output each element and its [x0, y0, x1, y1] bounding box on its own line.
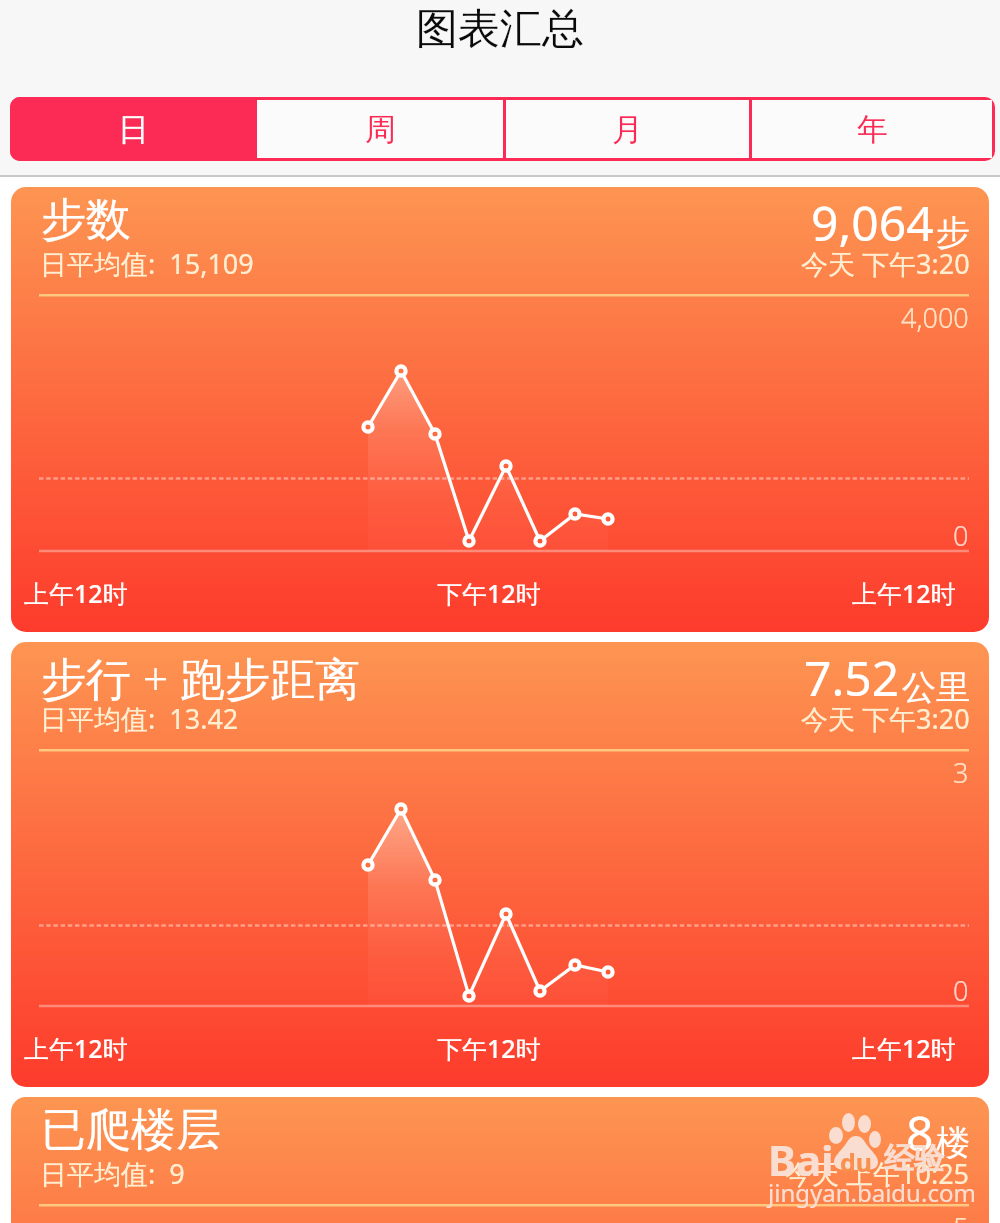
staticText: 0 [953, 517, 969, 554]
staticText: Bai [768, 1131, 834, 1188]
staticText: 年 [857, 110, 888, 149]
staticText: 下午12时 [437, 1031, 541, 1065]
button[interactable]: 年 [752, 100, 992, 158]
staticText: 步行 + 跑步距离 [41, 647, 361, 708]
staticText: 日平均值: 15,109 [40, 245, 254, 282]
staticText: 日平均值: 13.42 [40, 700, 239, 737]
button[interactable]: 日 [10, 97, 257, 161]
staticText: jingyan.baidu.com [768, 1176, 976, 1209]
staticText: 步 [936, 211, 970, 254]
staticText: 9,064 [811, 190, 934, 255]
staticText: 5 [953, 1209, 969, 1223]
staticText: 今天 上午10:25 [785, 1155, 970, 1192]
button[interactable]: 月 [506, 100, 749, 158]
staticText: 今天 下午3:20 [801, 700, 970, 737]
staticText: 月 [612, 110, 643, 149]
button[interactable]: 步数 [11, 187, 989, 632]
staticText: 上午12时 [24, 576, 128, 610]
staticText: 上午12时 [852, 576, 956, 610]
staticText: 图表汇总 [416, 3, 584, 56]
staticText: 7.52 [804, 645, 900, 710]
staticText: 下午12时 [437, 576, 541, 610]
staticText: 步数 [41, 192, 131, 249]
staticText: 已爬楼层 [41, 1102, 221, 1159]
button[interactable]: 步行 + 跑步距离 [11, 642, 989, 1087]
button[interactable]: 周 [257, 100, 503, 158]
staticText: du [840, 1145, 873, 1179]
staticText: 0 [953, 972, 969, 1009]
staticText: 公里 [902, 666, 970, 709]
staticText: 4,000 [901, 299, 969, 336]
staticText: 8 [906, 1100, 934, 1165]
staticText: 上午12时 [852, 1031, 956, 1065]
staticText: 日 [118, 110, 149, 149]
staticText: 今天 下午3:20 [801, 245, 970, 282]
staticText: 3 [953, 754, 969, 791]
button[interactable]: 已爬楼层 [11, 1097, 989, 1223]
staticText: 日平均值: 9 [40, 1155, 185, 1192]
staticText: 上午12时 [24, 1031, 128, 1065]
staticText: 经验 [884, 1140, 944, 1178]
staticText: 楼 [936, 1121, 970, 1164]
staticText: 周 [365, 110, 396, 149]
